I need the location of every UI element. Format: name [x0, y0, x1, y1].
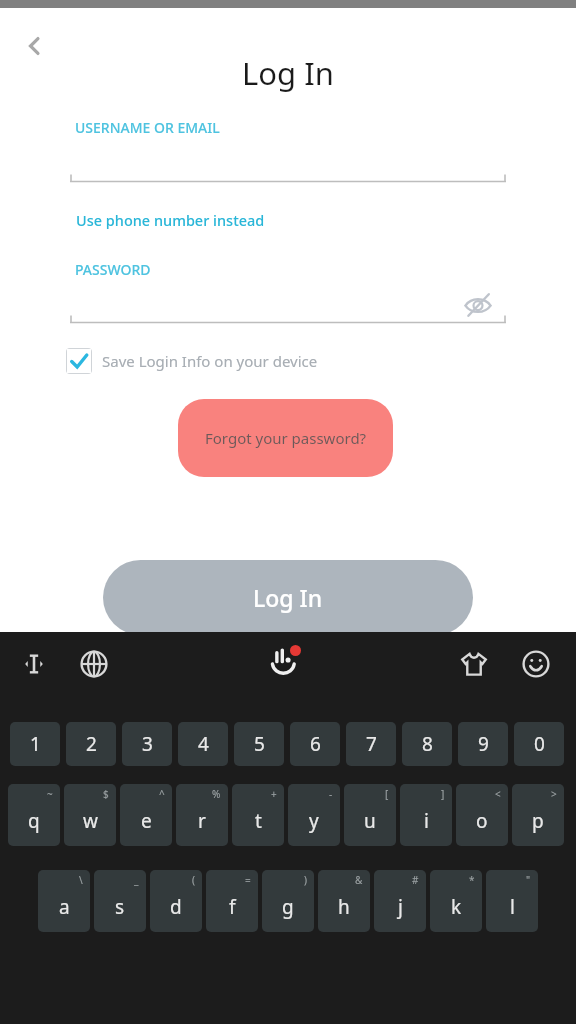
staticText: ~ [47, 787, 53, 801]
button[interactable]: Log In [103, 560, 473, 635]
staticText: \ [79, 873, 83, 887]
staticText: 3 [142, 731, 153, 757]
staticText: Log In [253, 582, 323, 613]
staticText: * [469, 873, 475, 887]
button[interactable]: Save Login Info on your device [66, 348, 318, 374]
button[interactable]: & [318, 870, 370, 932]
staticText: _ [134, 873, 139, 887]
staticText: % [212, 787, 221, 801]
button[interactable]: Show password [456, 283, 500, 327]
button[interactable]: - [288, 784, 340, 846]
button[interactable]: 7 [346, 722, 396, 766]
staticText: o [476, 808, 488, 834]
button[interactable]: [ [344, 784, 396, 846]
staticText: t [255, 808, 262, 834]
button[interactable]: ~ [8, 784, 60, 846]
staticText: 2 [86, 731, 97, 757]
button[interactable]: $ [64, 784, 116, 846]
button[interactable]: * [430, 870, 482, 932]
button[interactable]: _ [94, 870, 146, 932]
staticText: 8 [422, 731, 433, 757]
button[interactable]: 3 [122, 722, 172, 766]
button[interactable]: 8 [402, 722, 452, 766]
staticText: 9 [478, 731, 489, 757]
staticText: j [398, 894, 403, 920]
button[interactable]: Back [14, 26, 54, 66]
staticText: y [309, 808, 319, 834]
staticText: u [364, 808, 376, 834]
staticText: h [338, 894, 350, 920]
staticText: & [355, 873, 363, 887]
staticText: Use phone number instead [76, 210, 265, 230]
button[interactable]: ] [400, 784, 452, 846]
staticText: w [83, 808, 98, 834]
button[interactable]: + [232, 784, 284, 846]
button[interactable]: 0 [514, 722, 564, 766]
staticText: e [141, 808, 152, 834]
staticText: q [28, 808, 40, 834]
staticText: s [115, 894, 125, 920]
staticText: Log In [0, 52, 576, 94]
staticText: " [526, 873, 531, 887]
button[interactable]: 1 [10, 722, 60, 766]
button[interactable]: ) [262, 870, 314, 932]
button[interactable]: > [512, 784, 564, 846]
button[interactable]: Emoji [516, 644, 556, 684]
button[interactable]: Themes [454, 644, 494, 684]
staticText: 1 [30, 731, 41, 757]
button[interactable]: 2 [66, 722, 116, 766]
staticText: # [412, 873, 419, 887]
staticText: PASSWORD [75, 260, 151, 279]
staticText: 7 [366, 731, 377, 757]
button[interactable]: 5 [234, 722, 284, 766]
staticText: Save Login Info on your device [102, 351, 318, 371]
staticText: > [551, 787, 557, 801]
button[interactable]: Move cursor [14, 644, 54, 684]
staticText: l [510, 894, 515, 920]
staticText: k [451, 894, 462, 920]
staticText: ( [192, 873, 195, 887]
button[interactable]: 6 [290, 722, 340, 766]
staticText: 4 [198, 731, 209, 757]
staticText: Forgot your password? [205, 428, 367, 448]
button[interactable]: 9 [458, 722, 508, 766]
staticText: a [59, 894, 70, 920]
staticText: - [329, 787, 333, 801]
staticText: = [245, 873, 251, 887]
button[interactable]: Languages [74, 644, 114, 684]
button[interactable]: % [176, 784, 228, 846]
button[interactable]: = [206, 870, 258, 932]
staticText: d [170, 894, 182, 920]
staticText: ^ [159, 787, 165, 801]
button[interactable]: ( [150, 870, 202, 932]
staticText: 0 [534, 731, 545, 757]
staticText: + [271, 787, 277, 801]
staticText: g [282, 894, 294, 920]
staticText: 6 [310, 731, 321, 757]
staticText: [ [385, 787, 389, 801]
button[interactable]: Use phone number instead [70, 206, 271, 234]
button[interactable]: " [486, 870, 538, 932]
staticText: p [532, 808, 544, 834]
button[interactable]: ^ [120, 784, 172, 846]
staticText: 5 [254, 731, 265, 757]
staticText: i [424, 808, 429, 834]
button[interactable]: Keyboard menu [264, 642, 304, 682]
staticText: ] [441, 787, 445, 801]
staticText: f [229, 894, 236, 920]
button[interactable]: # [374, 870, 426, 932]
staticText: < [495, 787, 501, 801]
button[interactable]: 4 [178, 722, 228, 766]
staticText: r [198, 808, 206, 834]
staticText: $ [103, 787, 109, 801]
staticText: ) [304, 873, 307, 887]
button[interactable]: < [456, 784, 508, 846]
staticText: USERNAME OR EMAIL [75, 118, 220, 137]
button[interactable]: Forgot your password? [178, 399, 393, 477]
button[interactable]: \ [38, 870, 90, 932]
